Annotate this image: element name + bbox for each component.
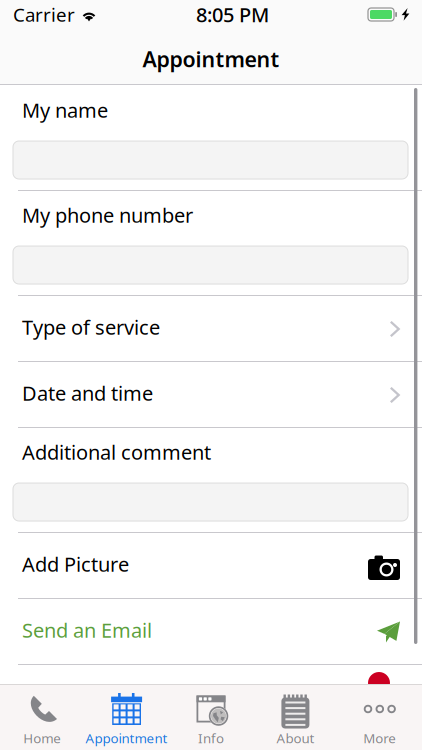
staticText: Appointment [142, 45, 279, 73]
button[interactable]: Add Picture [0, 533, 422, 599]
staticText: Appointment [86, 729, 168, 747]
staticText: Carrier [13, 2, 75, 27]
button[interactable]: Home [0, 684, 84, 750]
staticText: My phone number [22, 202, 193, 228]
button[interactable]: More [338, 684, 422, 750]
button[interactable]: Send an Email [0, 599, 422, 665]
staticText: 8:05 PM [196, 1, 269, 28]
button[interactable]: Date and time [0, 362, 422, 428]
staticText: About [276, 729, 314, 747]
staticText: Type of service [22, 314, 160, 340]
button[interactable]: Type of service [0, 296, 422, 362]
staticText: My name [22, 97, 108, 123]
button[interactable]: Info [169, 684, 253, 750]
staticText: Info [198, 729, 224, 747]
staticText: Add Picture [22, 551, 129, 577]
button[interactable]: About [253, 684, 338, 750]
staticText: Additional comment [22, 439, 211, 465]
staticText: Date and time [22, 380, 153, 406]
button[interactable]: Appointment [84, 684, 169, 750]
staticText: More [363, 729, 396, 747]
staticText: Home [23, 729, 61, 747]
staticText: Send an Email [22, 617, 152, 643]
